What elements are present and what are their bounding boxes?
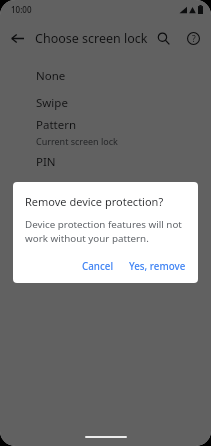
button[interactable]: Help bbox=[178, 23, 208, 53]
button[interactable]: Yes, remove bbox=[122, 255, 193, 278]
button[interactable]: None bbox=[0, 62, 211, 89]
staticText: Pattern bbox=[36, 117, 77, 133]
staticText: Swipe bbox=[36, 95, 68, 111]
staticText: 10:00 bbox=[11, 4, 32, 15]
button[interactable]: Swipe bbox=[0, 89, 211, 116]
staticText: ? bbox=[192, 33, 196, 45]
staticText: Choose screen lock bbox=[35, 30, 148, 47]
button[interactable]: Pattern bbox=[0, 116, 211, 148]
staticText: Cancel bbox=[82, 260, 114, 273]
staticText: None bbox=[36, 68, 66, 84]
staticText: Password bbox=[36, 181, 89, 197]
button[interactable]: Password bbox=[0, 175, 211, 202]
button[interactable]: Search bbox=[148, 23, 178, 53]
staticText: PIN bbox=[36, 154, 56, 170]
staticText: Device protection features will not work… bbox=[25, 218, 186, 245]
button[interactable]: Navigate up bbox=[0, 21, 34, 55]
staticText: Yes, remove bbox=[129, 260, 186, 273]
button[interactable]: Cancel bbox=[75, 255, 121, 278]
staticText: Current screen lock bbox=[36, 135, 118, 147]
button[interactable]: PIN bbox=[0, 148, 211, 175]
staticText: Remove device protection? bbox=[25, 194, 164, 209]
